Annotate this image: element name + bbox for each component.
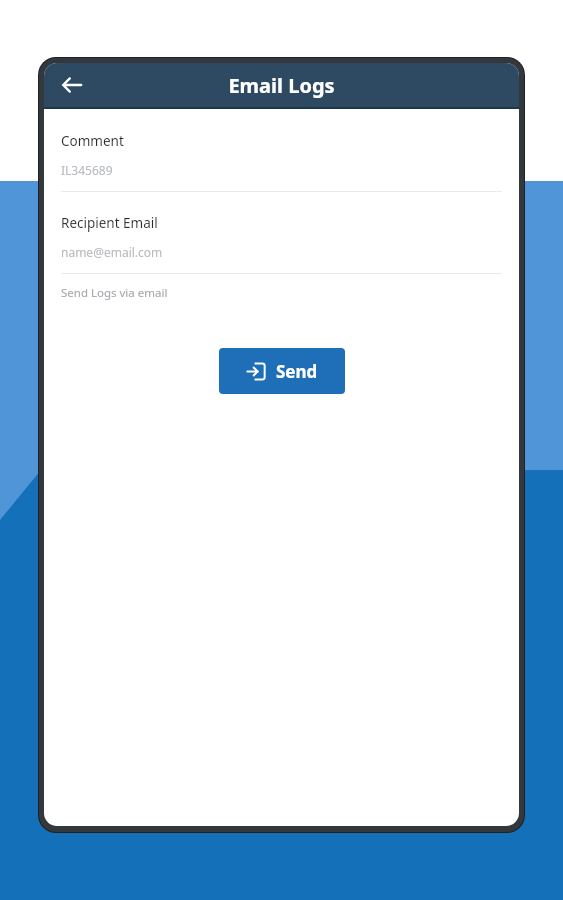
staticText: Email Logs <box>228 72 335 99</box>
staticText: Comment <box>61 132 124 150</box>
button[interactable]: Back <box>52 65 92 105</box>
staticText: Recipient Email <box>61 214 158 232</box>
button[interactable]: name@email.com <box>61 244 502 260</box>
staticText: name@email.com <box>61 244 163 260</box>
button[interactable]: Send <box>219 348 345 394</box>
staticText: Send Logs via email <box>61 285 168 301</box>
staticText: Send <box>276 360 318 383</box>
button[interactable]: IL345689 <box>61 162 502 178</box>
staticText: IL345689 <box>61 162 113 178</box>
